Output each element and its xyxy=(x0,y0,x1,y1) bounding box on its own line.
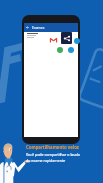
button[interactable]: Telegram xyxy=(74,38,80,44)
button[interactable]: Share xyxy=(61,32,72,44)
button[interactable] xyxy=(24,32,78,40)
staticText: Exames xyxy=(32,25,45,30)
staticText: Compartilhamento veloz xyxy=(26,144,79,150)
button[interactable]: Telegram xyxy=(68,47,74,53)
button[interactable]: WhatsApp xyxy=(57,47,63,53)
staticText: Você pode compartilhar o laudo do exame … xyxy=(26,152,80,163)
button[interactable]: Back xyxy=(26,26,29,29)
